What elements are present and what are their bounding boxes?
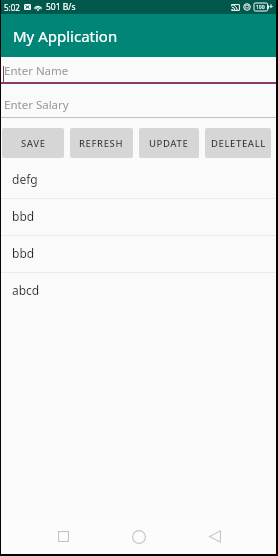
button[interactable]: bbd — [1, 236, 276, 273]
staticText: DELETEALL — [211, 137, 266, 150]
button[interactable]: bbd — [1, 199, 276, 236]
button[interactable]: DELETEALL — [205, 128, 271, 158]
button[interactable]: defg — [1, 162, 276, 199]
staticText: 100 — [256, 4, 265, 11]
button[interactable]: REFRESH — [70, 128, 133, 158]
button[interactable]: SAVE — [2, 128, 64, 158]
button[interactable]: Recent apps — [44, 519, 82, 554]
staticText: Enter Name — [4, 63, 69, 79]
staticText: Enter Salary — [4, 97, 69, 113]
staticText: REFRESH — [79, 137, 124, 150]
button[interactable]: abcd — [1, 273, 276, 310]
staticText: abcd — [12, 282, 40, 298]
button[interactable]: Back — [196, 519, 234, 554]
staticText: UPDATE — [149, 137, 189, 150]
staticText: defg — [12, 171, 38, 187]
button[interactable]: Home — [120, 519, 158, 554]
staticText: + — [269, 2, 274, 12]
staticText: bbd — [12, 208, 35, 224]
staticText: SAVE — [21, 137, 46, 150]
staticText: 5:02 — [4, 2, 20, 13]
button[interactable]: UPDATE — [139, 128, 199, 158]
staticText: bbd — [12, 245, 35, 261]
staticText: 501 B/s — [46, 1, 76, 13]
staticText: My Application — [13, 26, 118, 46]
